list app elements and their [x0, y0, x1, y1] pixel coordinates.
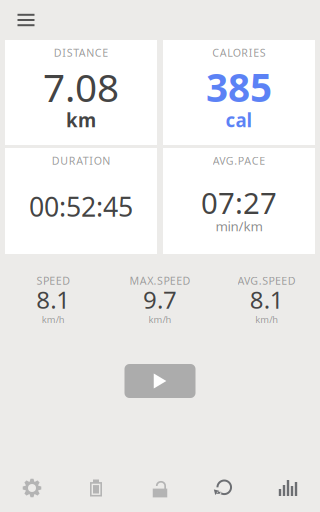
- staticText: MAX.SPEED: [129, 273, 191, 288]
- staticText: 8.1: [250, 284, 284, 315]
- button[interactable]: Settings: [0, 471, 64, 505]
- staticText: 385: [206, 61, 272, 113]
- button[interactable]: Statistics: [256, 471, 320, 505]
- staticText: km/h: [42, 313, 65, 326]
- staticText: DISTANCE: [54, 45, 108, 60]
- staticText: 00:52:45: [29, 189, 133, 224]
- staticText: 07:27: [201, 183, 277, 222]
- staticText: SPEED: [36, 273, 70, 288]
- staticText: km: [66, 108, 96, 132]
- button[interactable]: Lock: [128, 471, 192, 505]
- staticText: CALORIES: [212, 45, 266, 60]
- staticText: cal: [225, 108, 252, 132]
- staticText: 9.7: [143, 284, 177, 315]
- staticText: 7.08: [43, 61, 119, 113]
- staticText: km/h: [255, 313, 278, 326]
- staticText: 8.1: [36, 284, 70, 315]
- button[interactable]: Start: [124, 364, 195, 398]
- button[interactable]: Menu: [11, 6, 41, 34]
- staticText: AVG.SPEED: [238, 273, 296, 288]
- button[interactable]: Reset: [192, 471, 256, 505]
- staticText: AVG.PACE: [213, 153, 265, 168]
- staticText: min/km: [215, 217, 262, 235]
- button[interactable]: Battery: [64, 471, 128, 505]
- staticText: km/h: [148, 313, 171, 326]
- staticText: DURATION: [52, 153, 110, 168]
